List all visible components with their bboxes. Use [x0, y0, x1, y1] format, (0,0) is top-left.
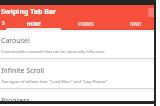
- staticText: S: [2, 20, 5, 27]
- staticText: HOME: [27, 21, 41, 27]
- staticText: Infinite Scroll: [1, 66, 45, 76]
- button[interactable]: Carousel: [0, 32, 160, 59]
- button[interactable]: Progress: [0, 92, 160, 101]
- button[interactable]: HOME: [6, 19, 61, 28]
- staticText: Customizable carousel that can be option…: [1, 49, 106, 54]
- staticText: FORMS: [78, 21, 94, 27]
- button[interactable]: Menu: [148, 8, 157, 17]
- staticText: Swiping Tab Bar: [1, 7, 57, 17]
- staticText: Carousel: [1, 36, 30, 46]
- button[interactable]: NAVI: [111, 19, 160, 28]
- staticText: Two types of infinite lists: "Load More"…: [1, 79, 109, 84]
- staticText: NAVI: [130, 21, 142, 27]
- button[interactable]: FORMS: [61, 19, 111, 28]
- staticText: Progress: [1, 96, 30, 101]
- button[interactable]: S: [0, 19, 6, 28]
- button[interactable]: Infinite Scroll: [0, 62, 160, 89]
